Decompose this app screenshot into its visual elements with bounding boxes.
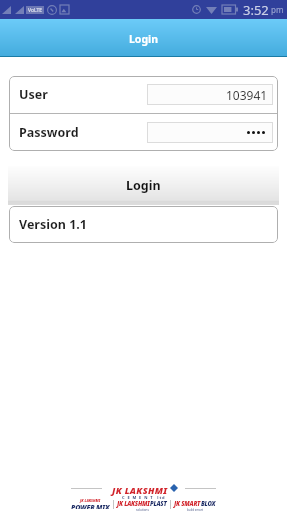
staticText: JK SMART — [174, 500, 201, 508]
staticText: User — [19, 86, 48, 103]
button[interactable]: Login — [8, 166, 279, 205]
staticText: VoLTE — [28, 7, 43, 14]
staticText: BLOX — [201, 500, 216, 508]
staticText: POWER MIX — [71, 503, 110, 509]
staticText: solutions — [136, 508, 149, 511]
button[interactable]: Version 1.1 — [9, 206, 278, 243]
button[interactable]: 103941 — [147, 84, 273, 105]
staticText: JK LAKSHMI — [112, 484, 168, 496]
staticText: JK LAKSHMI — [80, 498, 101, 503]
staticText: Version 1.1 — [19, 216, 87, 233]
staticText: build smart — [187, 508, 204, 511]
staticText: PLAST — [150, 500, 167, 508]
button[interactable] — [147, 122, 273, 143]
staticText: pm — [271, 4, 284, 15]
staticText: 3:52 — [243, 1, 269, 19]
staticText: 103941 — [226, 87, 268, 103]
staticText: JK LAKSHMI — [117, 500, 150, 508]
staticText: Password — [19, 124, 79, 141]
staticText: Login — [126, 177, 161, 194]
staticText: Login — [129, 32, 159, 46]
staticText: C E M E N T ltd — [122, 495, 166, 500]
